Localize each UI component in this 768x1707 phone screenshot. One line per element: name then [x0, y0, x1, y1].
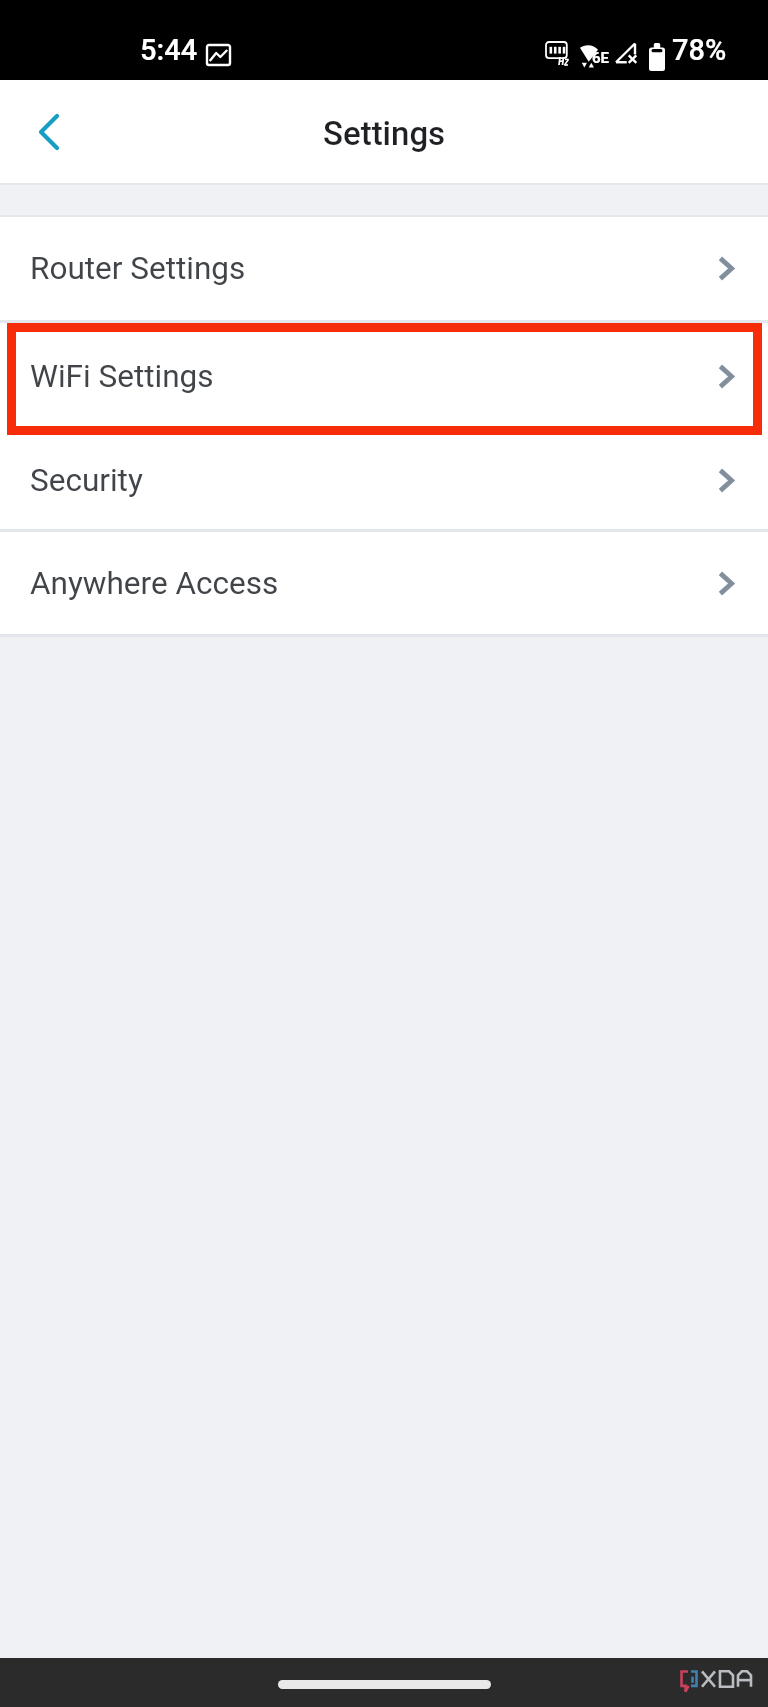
button[interactable]: Back	[16, 99, 82, 165]
staticText: WiFi Settings	[30, 358, 214, 395]
button[interactable]: Router Settings	[0, 217, 768, 320]
staticText: Router Settings	[30, 250, 246, 287]
button[interactable]: Security	[0, 435, 768, 529]
staticText: 5:44	[140, 33, 198, 67]
button[interactable]: WiFi Settings	[7, 323, 762, 435]
staticText: Anywhere Access	[30, 565, 279, 602]
staticText: Security	[30, 462, 143, 499]
staticText: Settings	[323, 114, 446, 153]
staticText: 78%	[672, 33, 727, 67]
button[interactable]: Anywhere Access	[0, 532, 768, 634]
staticText: 6E	[592, 49, 610, 67]
